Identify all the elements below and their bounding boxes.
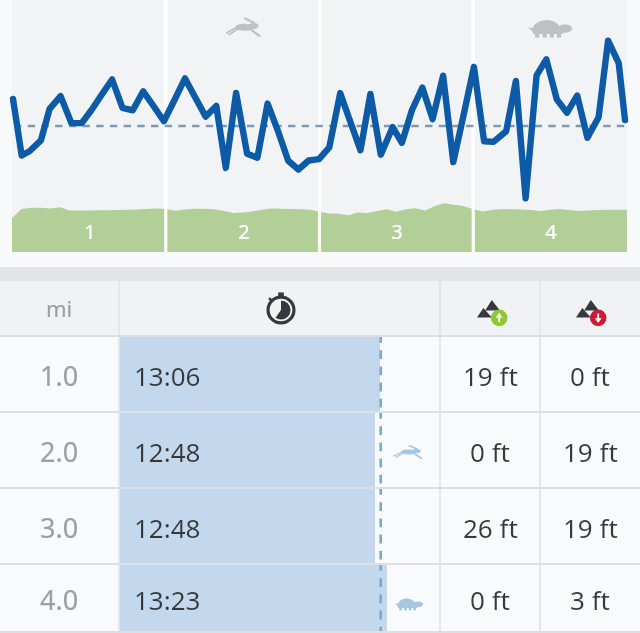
button[interactable]: 2.0 — [0, 413, 640, 489]
staticText: 13:23 — [134, 582, 201, 617]
staticText: 12:48 — [134, 434, 201, 469]
staticText: 4 — [521, 218, 581, 245]
staticText: 3 — [367, 218, 427, 245]
staticText: 4.0 — [40, 581, 79, 618]
staticText: 26 ft — [463, 510, 518, 545]
staticText: 0 ft — [470, 582, 510, 617]
button[interactable]: mi — [0, 281, 119, 337]
staticText: 2.0 — [40, 433, 79, 470]
staticText: mi — [46, 293, 73, 323]
staticText: 3.0 — [40, 509, 79, 546]
staticText: 1 — [60, 218, 120, 245]
staticText: 0 ft — [570, 358, 610, 393]
staticText: 19 ft — [563, 510, 618, 545]
button[interactable]: 4.0 — [0, 565, 640, 633]
staticText: 2 — [214, 218, 274, 245]
staticText: 0 ft — [470, 434, 510, 469]
staticText: 19 ft — [563, 434, 618, 469]
staticText: 1.0 — [40, 357, 79, 394]
button[interactable]: 3.0 — [0, 489, 640, 565]
button[interactable]: 1.0 — [0, 337, 640, 413]
staticText: 19 ft — [463, 358, 518, 393]
staticText: 3 ft — [570, 582, 610, 617]
staticText: 13:06 — [134, 358, 201, 393]
staticText: 12:48 — [134, 510, 201, 545]
